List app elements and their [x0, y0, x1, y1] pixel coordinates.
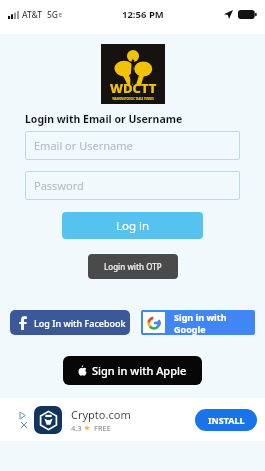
staticText: Crypto.com: [71, 407, 131, 422]
button[interactable]: Login with OTP: [88, 254, 178, 279]
staticText: Sign in with Apple: [92, 363, 187, 378]
staticText: 5G: [47, 9, 59, 21]
button[interactable]: Log In with Facebook: [10, 310, 130, 335]
staticText: Log In with Facebook: [34, 317, 126, 329]
staticText: WDCTT: [110, 79, 157, 97]
staticText: AT&T: [22, 9, 43, 21]
button[interactable]: INSTALL: [195, 409, 257, 431]
button[interactable]: Sign in with Google: [141, 310, 255, 335]
button[interactable]: Password: [25, 171, 240, 200]
staticText: Password: [34, 178, 84, 193]
staticText: Sign in with Google: [174, 311, 255, 335]
staticText: Email or Username: [34, 138, 133, 153]
button[interactable]: Log in: [62, 212, 203, 239]
staticText: Log in: [116, 218, 150, 234]
staticText: E: [59, 11, 63, 18]
staticText: Login with OTP: [104, 261, 162, 272]
staticText: WASHINGTON DC TABLE TENNIS: [112, 97, 154, 101]
button[interactable]: Email or Username: [25, 131, 240, 160]
staticText: Login with Email or Username: [25, 112, 183, 126]
staticText: 4.3: [71, 423, 82, 433]
button[interactable]: Sign in with Apple: [63, 356, 202, 385]
staticText: 12:56 PM: [122, 8, 164, 21]
staticText: FREE: [94, 423, 111, 433]
staticText: INSTALL: [208, 414, 245, 426]
